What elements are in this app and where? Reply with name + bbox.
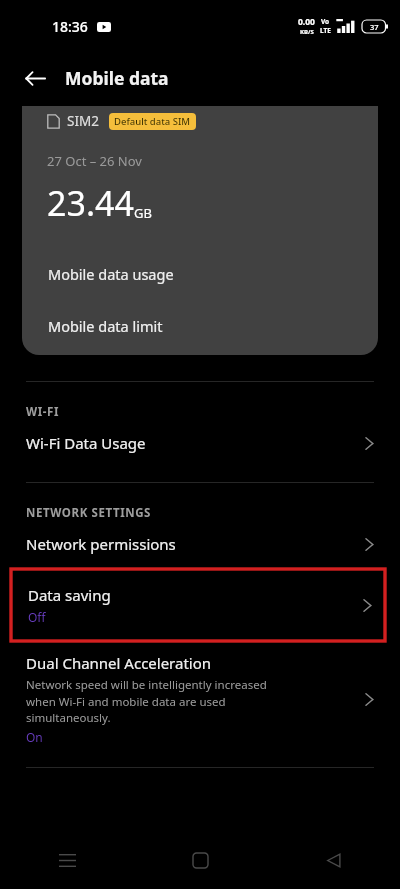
staticText: NETWORK SETTINGS — [26, 505, 152, 521]
staticText: Mobile data limit — [48, 316, 163, 336]
button[interactable]: Mobile data limit — [22, 300, 378, 352]
staticText: Dual Channel Acceleration — [26, 653, 212, 673]
staticText: LTE — [320, 26, 331, 35]
button[interactable]: Dual Channel Acceleration — [0, 643, 400, 753]
button[interactable]: Back — [14, 57, 56, 99]
button[interactable]: Mobile data usage — [22, 248, 378, 300]
staticText: KB/S — [300, 28, 314, 36]
staticText: GB — [134, 204, 152, 222]
button[interactable]: Network permissions — [0, 521, 400, 567]
staticText: Network speed will be intelligently incr… — [26, 677, 294, 725]
staticText: Vo — [321, 17, 330, 26]
staticText: Wi-Fi Data Usage — [26, 433, 364, 453]
staticText: 37 — [370, 22, 379, 32]
staticText: Default data SIM — [114, 115, 191, 128]
staticText: 23.44 — [47, 180, 134, 226]
staticText: Network permissions — [26, 534, 364, 554]
button[interactable]: Data saving — [11, 569, 385, 641]
staticText: On — [26, 729, 43, 745]
staticText: 18:36 — [52, 17, 88, 36]
staticText: Mobile data usage — [48, 264, 174, 284]
staticText: Off — [28, 609, 46, 625]
staticText: Data saving — [28, 585, 111, 605]
button[interactable]: Home — [134, 831, 267, 889]
staticText: 27 Oct – 26 Nov — [47, 152, 142, 170]
button[interactable]: Back — [267, 831, 400, 889]
staticText: WI-FI — [26, 404, 60, 420]
staticText: Mobile data — [65, 66, 169, 90]
staticText: 0.00 — [298, 16, 315, 28]
staticText: SIM2 — [67, 112, 99, 130]
button[interactable]: Recents — [0, 831, 134, 889]
button[interactable]: Wi-Fi Data Usage — [0, 420, 400, 466]
